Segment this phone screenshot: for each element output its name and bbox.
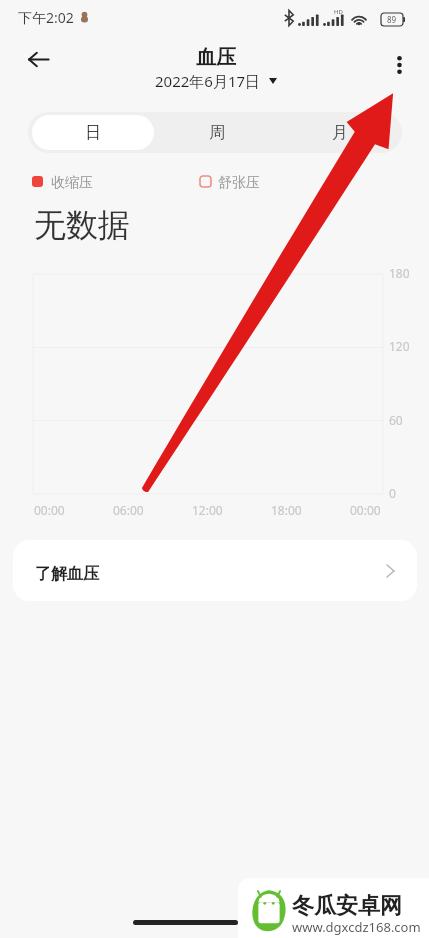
staticText: 了解血压 [35,564,99,584]
staticText: 00:00 [350,502,381,518]
staticText: 下午2:02 [18,8,74,27]
staticText: 月 [332,123,348,143]
staticText: 00:00 [34,502,65,518]
staticText: 89 [387,14,397,25]
staticText: 血压 [196,45,236,70]
button[interactable]: 周 [155,112,278,153]
button[interactable]: More options [381,47,417,83]
staticText: 12:00 [192,502,223,518]
staticText: 无数据 [34,205,130,245]
staticText: HD [334,8,343,16]
staticText: 周 [209,123,225,143]
staticText: 0 [389,485,396,501]
staticText: 60 [389,412,403,428]
staticText: www.dgxcdz168.com [292,918,421,936]
staticText: 06:00 [113,502,144,518]
button[interactable]: Back [20,41,56,77]
staticText: 2022年6月17日 [155,71,261,91]
staticText: 舒张压 [218,174,260,192]
staticText: 18:00 [271,502,302,518]
staticText: 收缩压 [51,174,93,192]
staticText: 冬瓜安卓网 [292,892,402,920]
staticText: 180 [389,265,410,281]
button[interactable]: 月 [278,112,402,153]
button[interactable]: 日 [32,112,154,153]
staticText: 日 [85,123,101,143]
staticText: 120 [389,338,410,354]
button[interactable]: 了解血压 [13,540,417,601]
